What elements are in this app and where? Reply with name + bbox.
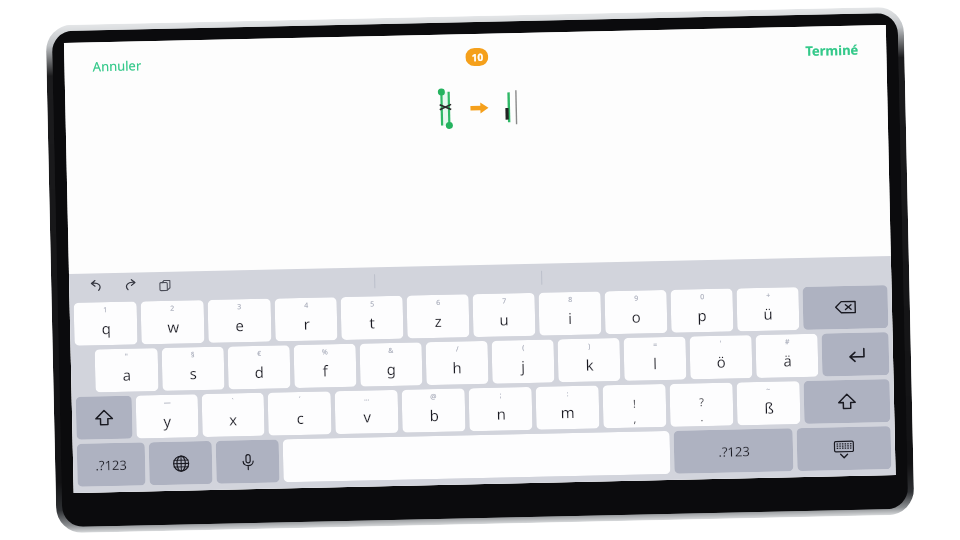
staticText: 3	[237, 302, 242, 312]
staticText: r	[303, 314, 310, 334]
button[interactable]: .?123	[674, 428, 793, 474]
staticText: +	[765, 291, 771, 301]
staticText: d	[254, 362, 264, 382]
button[interactable]: Hide keyboard	[796, 426, 891, 471]
staticText: s	[189, 363, 197, 383]
staticText: %	[322, 347, 328, 357]
staticText: ;	[500, 391, 502, 401]
staticText: /	[456, 344, 459, 355]
staticText: &	[388, 346, 394, 356]
button[interactable]: —	[136, 394, 199, 438]
button[interactable]: 5	[341, 296, 403, 340]
button[interactable]: '	[689, 335, 752, 379]
staticText: p	[697, 305, 707, 325]
button[interactable]: Copy	[153, 274, 177, 298]
button[interactable]: 6	[406, 294, 469, 339]
button[interactable]: Backspace	[802, 285, 888, 330]
staticText: #	[784, 337, 790, 347]
button[interactable]: ;	[469, 387, 532, 431]
button[interactable]: Space	[283, 431, 670, 482]
button[interactable]: 10	[465, 48, 489, 66]
staticText: f	[322, 360, 328, 380]
button[interactable]: `	[202, 393, 264, 437]
staticText: z	[434, 311, 442, 331]
staticText: ü	[763, 304, 773, 324]
button[interactable]: 8	[538, 291, 601, 336]
button[interactable]: …	[335, 390, 398, 434]
button[interactable]: )	[557, 338, 620, 382]
button[interactable]: Return	[821, 332, 889, 377]
button[interactable]: (	[491, 339, 554, 384]
staticText: ?	[699, 394, 704, 409]
staticText: !	[633, 396, 636, 411]
button[interactable]: ~	[736, 381, 800, 425]
button[interactable]: 7	[472, 293, 535, 337]
button[interactable]: ?	[669, 382, 733, 427]
staticText: =	[653, 340, 658, 350]
staticText: m	[560, 402, 575, 422]
staticText: 6	[436, 298, 441, 308]
staticText: :	[567, 389, 569, 399]
staticText: g	[386, 359, 396, 379]
staticText: …	[364, 393, 370, 403]
button[interactable]: §	[162, 347, 224, 391]
staticText: b	[429, 405, 439, 425]
staticText: t	[369, 312, 375, 332]
button[interactable]: @	[402, 388, 465, 433]
staticText: Terminé	[805, 41, 858, 60]
button[interactable]: 1	[74, 301, 137, 346]
button[interactable]: =	[623, 336, 686, 381]
staticText: —	[164, 398, 171, 408]
staticText: ß	[764, 398, 774, 418]
button[interactable]: %	[294, 344, 356, 388]
button[interactable]: :	[536, 385, 599, 430]
button[interactable]: Annuler	[86, 50, 148, 81]
staticText: v	[363, 406, 371, 427]
staticText: Annuler	[92, 56, 142, 75]
button[interactable]: 2	[141, 300, 204, 344]
staticText: .	[700, 409, 703, 424]
staticText: 1	[103, 305, 108, 315]
button[interactable]: 3	[208, 299, 271, 343]
button[interactable]: "	[95, 348, 158, 392]
staticText: 0	[699, 292, 705, 302]
staticText: ´	[299, 395, 301, 405]
staticText: a	[122, 365, 131, 385]
staticText: 2	[170, 304, 175, 314]
button[interactable]: +	[736, 287, 799, 331]
button[interactable]: ´	[268, 391, 331, 436]
staticText: §	[191, 350, 195, 360]
button[interactable]: .?123	[77, 442, 146, 487]
staticText: i	[568, 308, 572, 328]
staticText: e	[235, 315, 244, 335]
button[interactable]: &	[360, 342, 422, 387]
button[interactable]: 9	[604, 290, 667, 334]
staticText: @	[430, 392, 437, 402]
button[interactable]: Shift	[803, 379, 890, 424]
button[interactable]: /	[426, 341, 488, 385]
staticText: ö	[716, 352, 726, 372]
button[interactable]: 0	[670, 288, 733, 333]
staticText: x	[229, 409, 237, 429]
button[interactable]: Shift	[76, 396, 133, 440]
staticText: 7	[502, 296, 507, 306]
staticText: w	[167, 317, 179, 337]
staticText: `	[232, 396, 234, 406]
staticText: .?123	[95, 456, 127, 474]
staticText: u	[499, 309, 509, 330]
button[interactable]: Dictate	[216, 439, 280, 484]
button[interactable]: €	[228, 345, 290, 389]
staticText: j	[521, 356, 525, 376]
button[interactable]: Undo	[83, 274, 108, 300]
staticText: o	[631, 306, 641, 327]
staticText: q	[101, 318, 111, 338]
staticText: "	[125, 352, 128, 362]
staticText: 8	[568, 295, 573, 305]
staticText: ,	[633, 411, 636, 426]
button[interactable]: Change language	[149, 441, 213, 485]
button[interactable]: Terminé	[799, 35, 865, 66]
button[interactable]: !	[602, 384, 666, 428]
button[interactable]: #	[755, 334, 818, 378]
button[interactable]: 4	[275, 297, 337, 341]
button[interactable]: Redo	[118, 273, 143, 299]
